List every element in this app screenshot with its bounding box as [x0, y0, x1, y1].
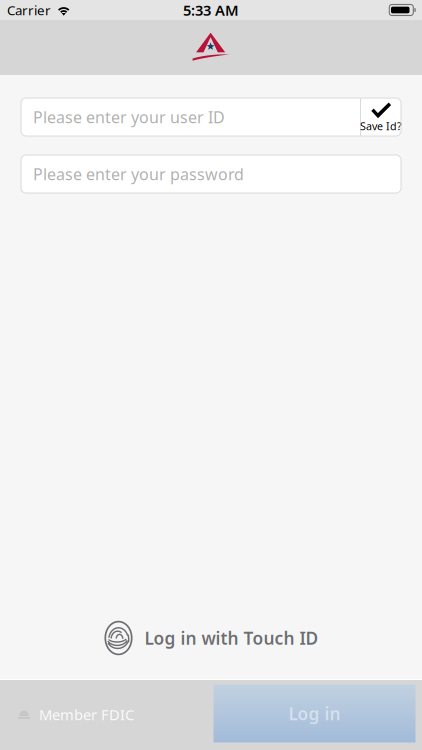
button[interactable]: Save Id?: [361, 98, 401, 136]
staticText: Log in: [288, 702, 340, 725]
staticText: 5:33 AM: [183, 0, 239, 20]
staticText: Please enter your password: [33, 163, 244, 185]
staticText: Please enter your user ID: [33, 106, 225, 128]
staticText: Member FDIC: [39, 705, 134, 724]
button[interactable]: Log in with Touch ID: [103, 614, 318, 662]
staticText: Save Id?: [360, 119, 402, 133]
staticText: Carrier: [7, 1, 51, 19]
staticText: Log in with Touch ID: [144, 626, 318, 649]
button[interactable]: Log in: [213, 679, 415, 749]
